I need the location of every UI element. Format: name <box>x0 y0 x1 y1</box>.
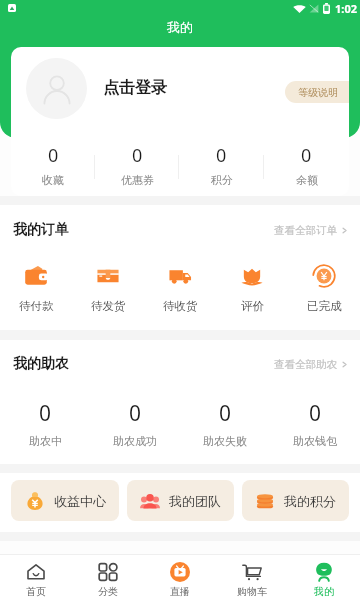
staticText: 我的 <box>167 19 193 35</box>
staticText: 积分 <box>211 173 233 187</box>
button[interactable]: 0 <box>0 382 90 464</box>
staticText: 余额 <box>296 173 318 187</box>
button[interactable]: 已完成 <box>288 248 360 329</box>
button[interactable]: 我的积分 <box>242 480 349 521</box>
staticText: 收藏 <box>42 173 64 187</box>
staticText: 我的团队 <box>169 493 221 509</box>
button[interactable]: 0 <box>180 382 270 464</box>
staticText: 0 <box>219 399 232 428</box>
staticText: 0 <box>301 143 312 168</box>
staticText: 0 <box>48 143 59 168</box>
button[interactable]: 我的 <box>288 555 360 600</box>
button[interactable]: 查看全部订单 <box>274 224 348 237</box>
staticText: 待付款 <box>19 299 54 313</box>
button[interactable]: 0 <box>11 139 95 194</box>
button[interactable]: 待付款 <box>0 248 72 329</box>
button[interactable]: 等级说明 <box>285 81 349 103</box>
staticText: 我的助农 <box>13 355 69 373</box>
staticText: 收益中心 <box>54 493 106 509</box>
staticText: 待发货 <box>91 299 126 313</box>
staticText: 助农中 <box>29 434 62 448</box>
button[interactable]: 点击登录 <box>103 78 167 98</box>
button[interactable]: 0 <box>264 139 349 194</box>
staticText: 直播 <box>170 585 190 598</box>
staticText: 助农钱包 <box>293 434 337 448</box>
staticText: 我的 <box>314 585 334 598</box>
button[interactable]: 0 <box>179 139 264 194</box>
staticText: 我的积分 <box>284 493 336 509</box>
button[interactable]: 分类 <box>72 555 144 600</box>
staticText: 0 <box>129 399 142 428</box>
button[interactable]: 评价 <box>216 248 288 329</box>
staticText: 助农成功 <box>113 434 157 448</box>
staticText: 优惠券 <box>121 173 154 187</box>
button[interactable]: 待发货 <box>72 248 144 329</box>
staticText: 查看全部订单 <box>274 224 337 237</box>
staticText: 购物车 <box>237 585 267 598</box>
staticText: 分类 <box>98 585 118 598</box>
staticText: 0 <box>216 143 227 168</box>
button[interactable]: 0 <box>95 139 179 194</box>
button[interactable]: 0 <box>270 382 360 464</box>
staticText: 评价 <box>241 299 264 313</box>
button[interactable]: 我的团队 <box>127 480 234 521</box>
button[interactable]: 购物车 <box>216 555 288 600</box>
staticText: 0 <box>132 143 143 168</box>
staticText: 首页 <box>26 585 46 598</box>
staticText: 已完成 <box>307 299 342 313</box>
staticText: 查看全部助农 <box>274 358 337 371</box>
staticText: 待收货 <box>163 299 198 313</box>
button[interactable]: 首页 <box>0 555 72 600</box>
staticText: 1:02 <box>335 1 357 16</box>
staticText: 我的订单 <box>13 221 69 239</box>
button[interactable]: 待收货 <box>144 248 216 329</box>
button[interactable]: 直播 <box>144 555 216 600</box>
button[interactable]: 收益中心 <box>11 480 119 521</box>
staticText: 0 <box>39 399 52 428</box>
staticText: 等级说明 <box>298 86 338 99</box>
button[interactable]: 查看全部助农 <box>274 358 348 371</box>
staticText: 助农失败 <box>203 434 247 448</box>
button[interactable]: Avatar <box>26 58 87 119</box>
button[interactable]: 0 <box>90 382 180 464</box>
staticText: 0 <box>309 399 322 428</box>
